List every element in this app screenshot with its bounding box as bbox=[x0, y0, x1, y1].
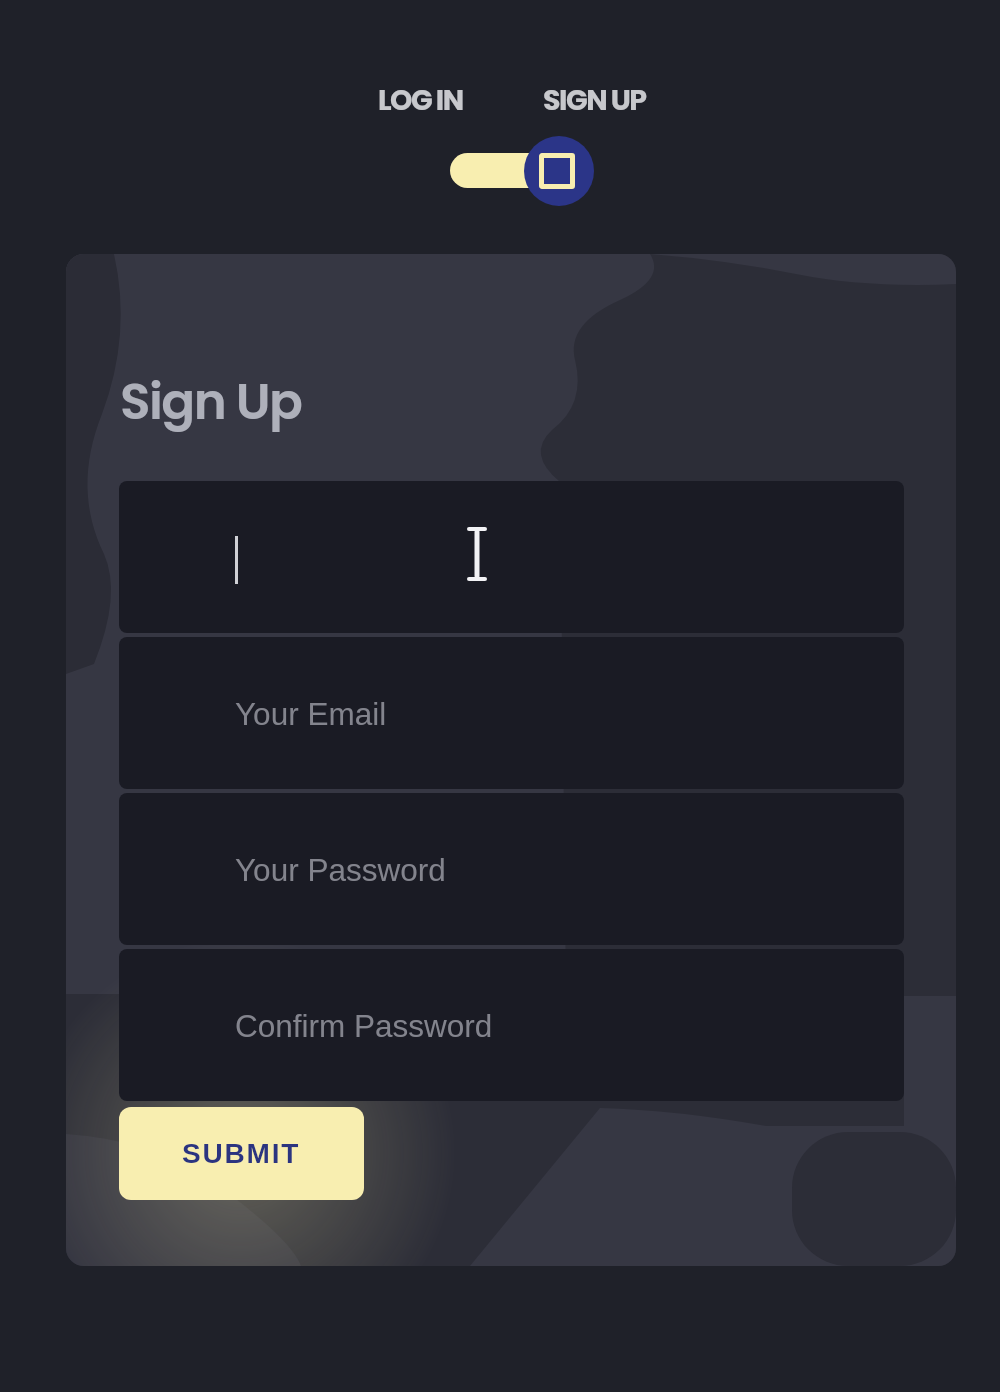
button[interactable]: Confirm Password bbox=[119, 949, 904, 1101]
staticText: SIGN UP bbox=[543, 80, 646, 120]
button[interactable] bbox=[450, 136, 594, 206]
button[interactable]: SUBMIT bbox=[119, 1107, 364, 1200]
button[interactable]: SIGN UP bbox=[524, 78, 664, 122]
button[interactable]: Your Email bbox=[119, 637, 904, 789]
button[interactable]: Your Password bbox=[119, 793, 904, 945]
button[interactable]: LOG IN bbox=[350, 78, 490, 122]
staticText: SUBMIT bbox=[182, 1138, 301, 1169]
staticText: Your Email bbox=[235, 696, 387, 731]
staticText: Your Password bbox=[235, 852, 446, 887]
button[interactable] bbox=[119, 481, 904, 633]
staticText: Confirm Password bbox=[235, 1008, 493, 1043]
staticText: LOG IN bbox=[378, 80, 463, 120]
staticText: Sign Up bbox=[120, 367, 302, 437]
